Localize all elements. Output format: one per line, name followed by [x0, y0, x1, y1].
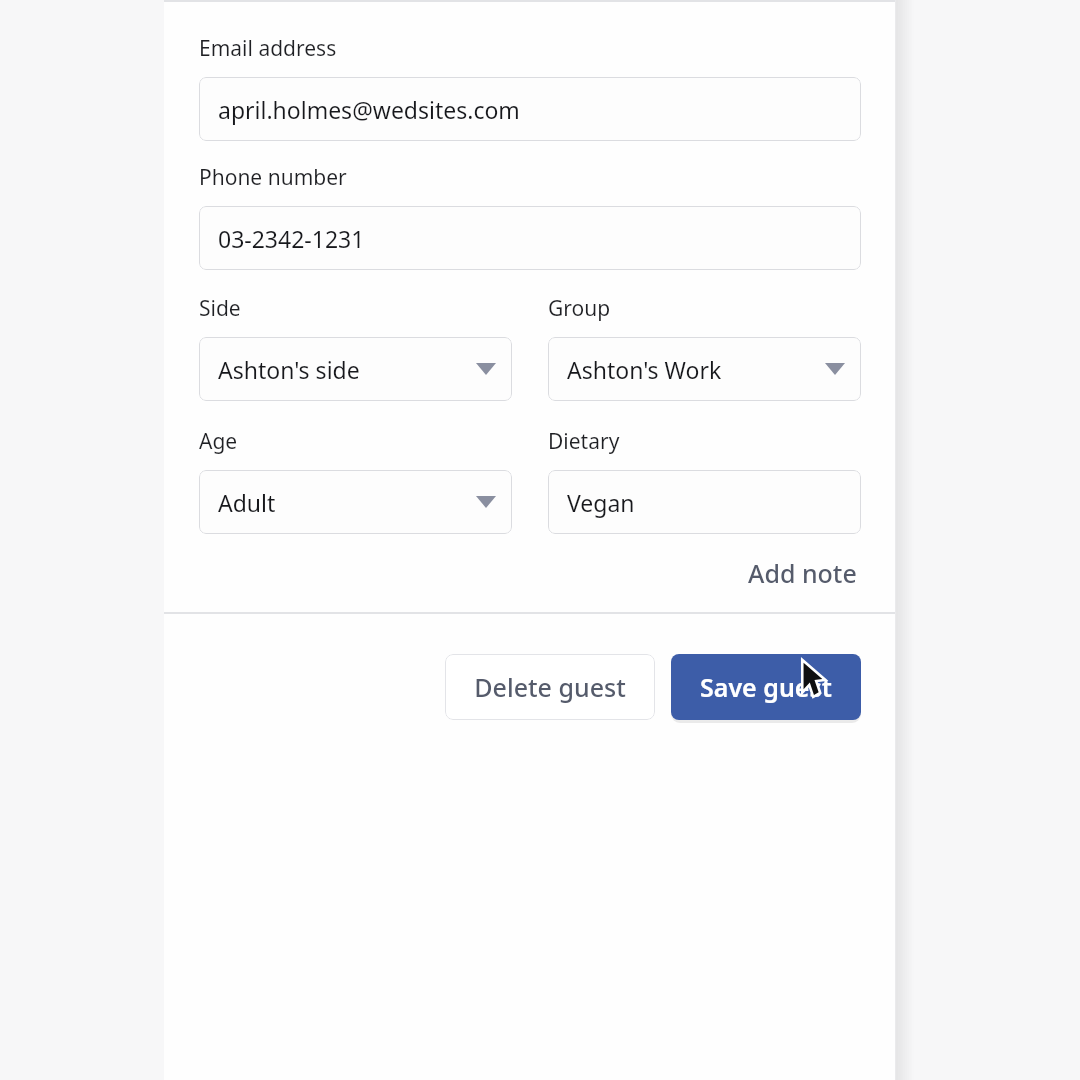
staticText: Age: [199, 427, 238, 456]
staticText: Delete guest: [474, 670, 626, 704]
button[interactable]: Delete guest: [445, 654, 655, 720]
button[interactable]: Ashton's side: [199, 337, 512, 401]
staticText: Side: [199, 294, 241, 323]
staticText: Ashton's side: [218, 354, 360, 385]
button[interactable]: Ashton's Work: [548, 337, 861, 401]
staticText: Vegan: [567, 487, 635, 518]
button[interactable]: Adult: [199, 470, 512, 534]
staticText: Phone number: [199, 163, 347, 192]
staticText: Add note: [748, 556, 857, 590]
staticText: Email address: [199, 34, 337, 63]
staticText: Adult: [218, 487, 276, 518]
other: Pointer: [802, 662, 828, 696]
button[interactable]: april.holmes@wedsites.com: [199, 77, 861, 141]
staticText: april.holmes@wedsites.com: [218, 94, 520, 125]
button[interactable]: Save guest: [671, 654, 861, 720]
staticText: Group: [548, 294, 611, 323]
button[interactable]: 03-2342-1231: [199, 206, 861, 270]
button[interactable]: Add note: [744, 552, 861, 594]
staticText: 03-2342-1231: [218, 223, 365, 254]
button[interactable]: Vegan: [548, 470, 861, 534]
staticText: Dietary: [548, 427, 620, 456]
staticText: Save guest: [700, 670, 832, 704]
staticText: Ashton's Work: [567, 354, 722, 385]
